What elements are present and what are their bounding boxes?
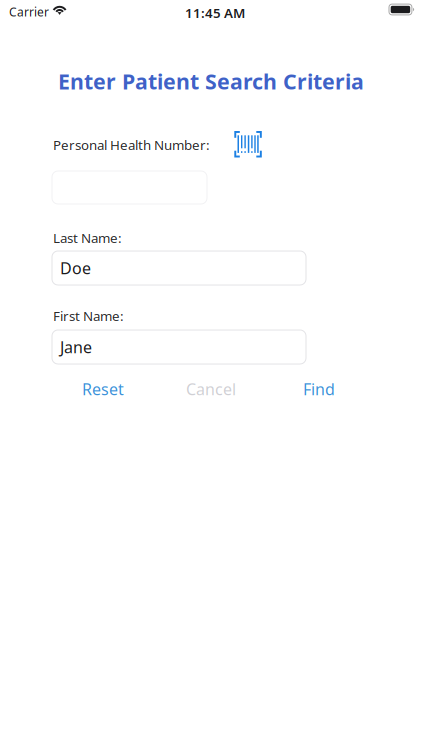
button[interactable]: Scan barcode: [226, 122, 270, 166]
staticText: 11:45 AM: [185, 4, 245, 22]
button[interactable]: Cancel: [170, 371, 252, 407]
staticText: Jane: [60, 336, 92, 358]
staticText: Last Name:: [53, 229, 122, 247]
button[interactable]: Reset: [66, 371, 140, 407]
staticText: Find: [303, 378, 335, 400]
staticText: Personal Health Number:: [53, 136, 210, 154]
staticText: Reset: [82, 378, 124, 400]
staticText: Enter Patient Search Criteria: [58, 67, 364, 95]
staticText: First Name:: [53, 307, 124, 325]
staticText: Carrier: [9, 4, 49, 20]
button[interactable]: Find: [285, 371, 353, 407]
staticText: Cancel: [186, 378, 236, 400]
staticText: Doe: [60, 257, 91, 279]
